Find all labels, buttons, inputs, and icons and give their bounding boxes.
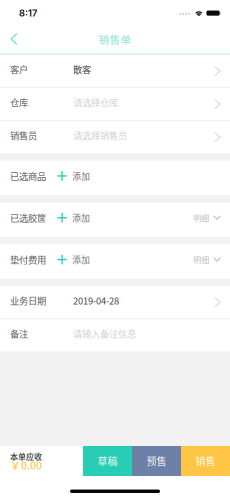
- button[interactable]: 预售: [132, 446, 181, 476]
- staticText: 已选胶筐: [10, 211, 46, 224]
- staticText: 散客: [73, 62, 91, 76]
- button[interactable]: 业务日期: [0, 286, 230, 318]
- staticText: 已选商品: [10, 169, 46, 183]
- button[interactable]: 销售员: [0, 121, 230, 153]
- button[interactable]: 已选商品: [0, 161, 230, 195]
- button[interactable]: 已选胶筐: [0, 203, 230, 237]
- staticText: 业务日期: [10, 294, 46, 307]
- staticText: 销售: [195, 454, 215, 468]
- staticText: 2019-04-28: [73, 294, 119, 307]
- button[interactable]: 备注: [0, 319, 230, 351]
- button[interactable]: Back: [0, 25, 28, 53]
- staticText: ￥0.00: [10, 457, 42, 472]
- staticText: 本单应收: [10, 450, 42, 462]
- staticText: 客户: [10, 62, 28, 76]
- button[interactable]: 垫付费用: [0, 244, 230, 279]
- staticText: 添加: [72, 211, 90, 224]
- staticText: 请选择仓库: [73, 95, 118, 109]
- button[interactable]: 销售: [181, 446, 230, 476]
- staticText: 预售: [146, 454, 166, 468]
- staticText: 垫付费用: [10, 253, 46, 266]
- staticText: 仓库: [10, 95, 28, 109]
- button[interactable]: 仓库: [0, 88, 230, 120]
- staticText: 请输入备注信息: [73, 327, 136, 340]
- staticText: 8:17: [19, 7, 37, 19]
- staticText: 草稿: [97, 454, 117, 468]
- button[interactable]: 草稿: [83, 446, 132, 476]
- staticText: 销售单: [98, 31, 131, 47]
- staticText: 添加: [72, 170, 90, 182]
- staticText: 明细: [193, 212, 209, 224]
- staticText: 明细: [193, 254, 209, 265]
- staticText: 请选择销售员: [73, 128, 127, 142]
- staticText: 添加: [72, 253, 90, 266]
- staticText: 销售员: [10, 128, 37, 142]
- staticText: 备注: [10, 327, 28, 340]
- button[interactable]: 客户: [0, 55, 230, 87]
